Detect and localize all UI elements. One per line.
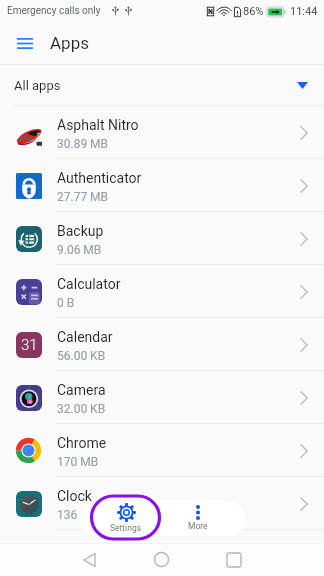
staticText: Camera (57, 382, 106, 398)
staticText: Chrome (57, 435, 107, 451)
button[interactable]: Home (145, 543, 178, 576)
staticText: Authenticator (57, 170, 142, 186)
staticText: Asphalt Nitro (57, 117, 139, 133)
button[interactable]: Back (73, 543, 106, 576)
button[interactable]: Chrome (0, 424, 324, 476)
staticText: Backup (57, 223, 104, 239)
button[interactable]: More (164, 501, 232, 536)
staticText: 30.89 MB (57, 137, 109, 151)
button[interactable]: Recents (217, 543, 250, 576)
button[interactable]: Asphalt Nitro (0, 106, 324, 158)
staticText: More (188, 521, 208, 531)
staticText: Emergency calls only (7, 5, 101, 17)
staticText: All apps (14, 78, 61, 93)
button[interactable]: Camera (0, 371, 324, 423)
button[interactable]: Calculator (0, 265, 324, 317)
staticText: 9.06 MB (57, 243, 102, 257)
staticText: Calculator (57, 276, 121, 292)
staticText: 31 (21, 336, 38, 354)
button[interactable]: 31 (0, 318, 324, 370)
staticText: 170 MB (57, 455, 99, 469)
staticText: 11:44 (290, 5, 318, 18)
staticText: 27.77 MB (57, 190, 109, 204)
staticText: 32.00 KB (57, 402, 106, 416)
button[interactable]: Menu (8, 27, 41, 60)
staticText: 86% (243, 5, 264, 18)
staticText: 0 B (57, 296, 75, 310)
button[interactable]: All apps (0, 65, 324, 105)
staticText: 56.00 KB (57, 349, 106, 363)
button[interactable]: Settings (92, 501, 160, 536)
staticText: Apps (50, 33, 89, 53)
staticText: Clock (57, 488, 92, 504)
button[interactable]: Backup (0, 212, 324, 264)
button[interactable]: Clock (0, 477, 324, 529)
staticText: 136 KB (57, 508, 96, 522)
staticText: Calendar (57, 329, 113, 345)
staticText: Settings (110, 523, 142, 533)
button[interactable]: Authenticator (0, 159, 324, 211)
